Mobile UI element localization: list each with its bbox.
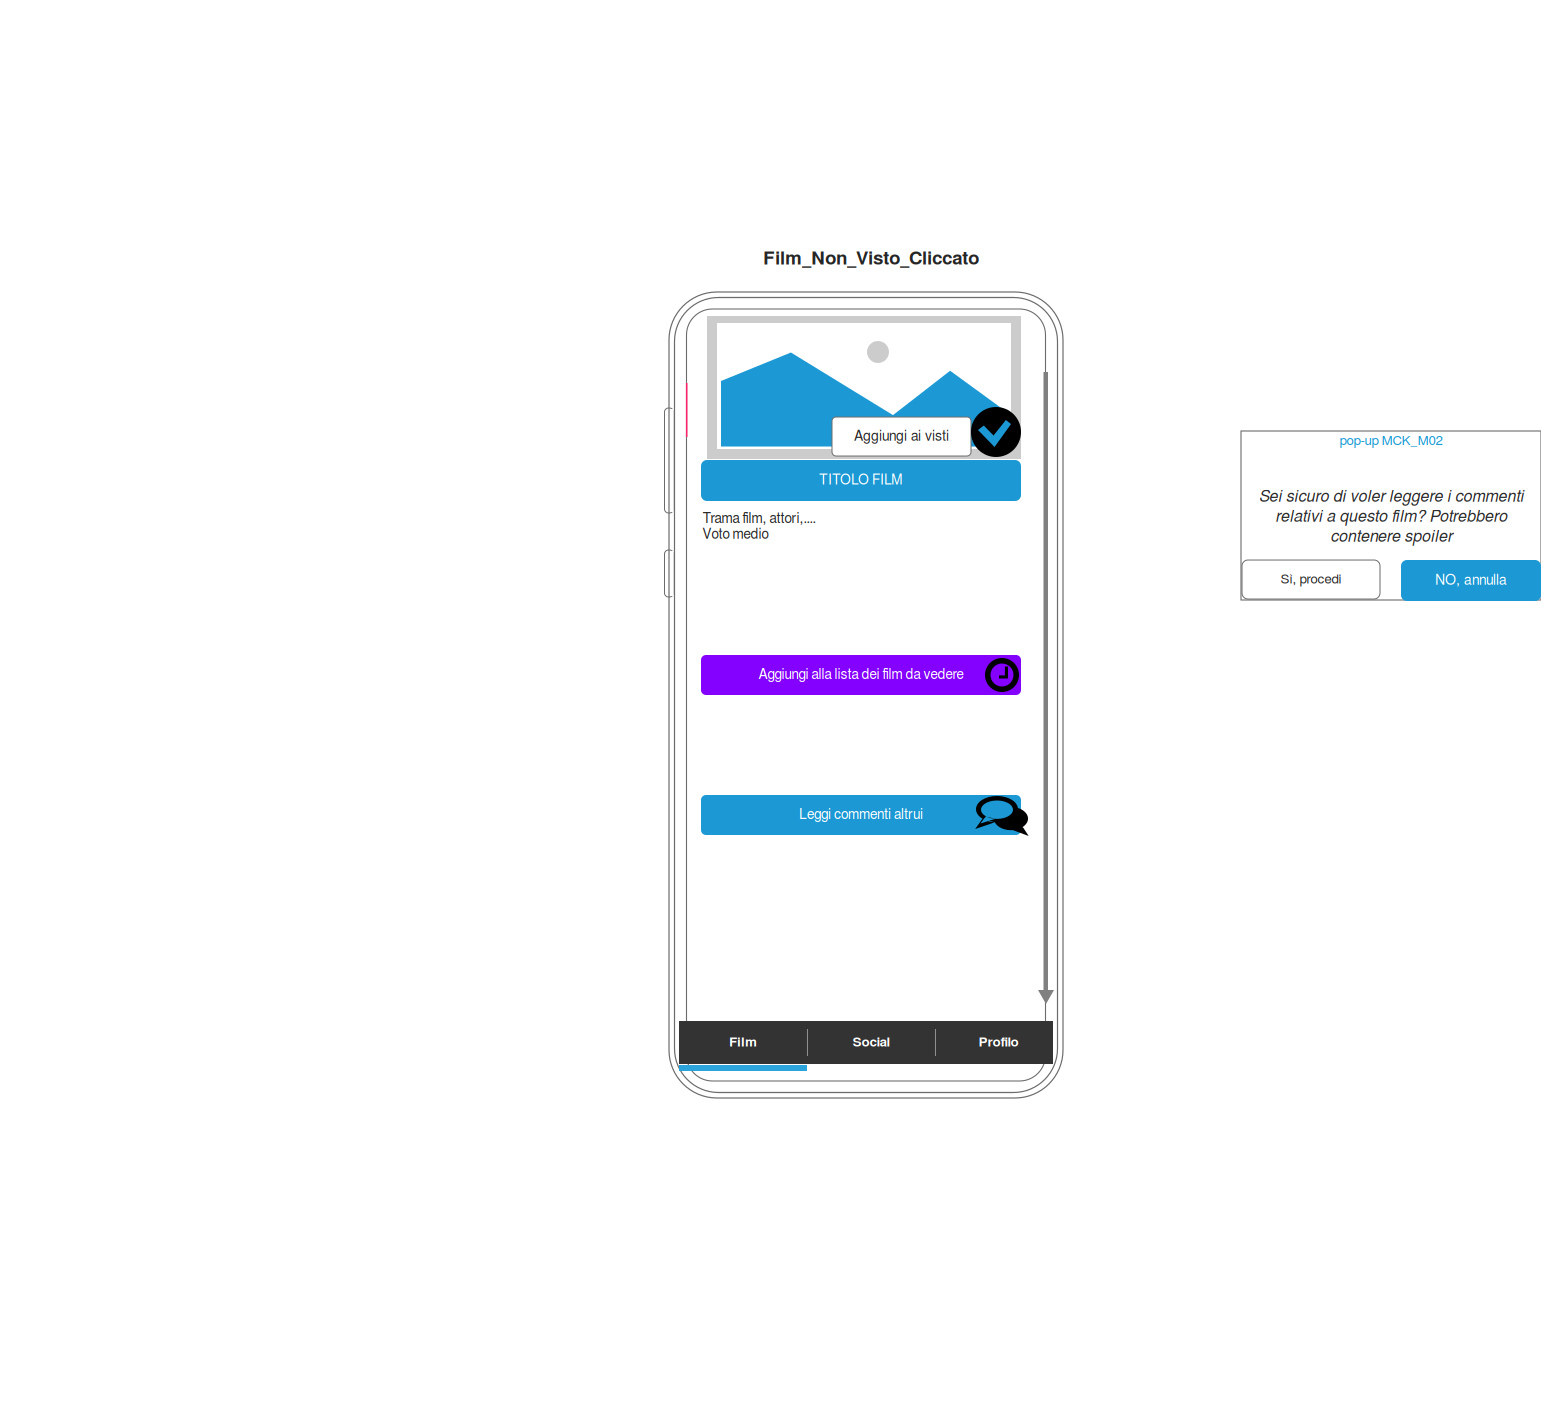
staticText: Sì, procedi — [1280, 573, 1341, 586]
button[interactable]: Leggi commenti altrui — [701, 795, 1021, 835]
staticText: Film_Non_Visto_Cliccato — [763, 250, 979, 268]
button[interactable]: Sì, procedi — [1242, 560, 1380, 599]
button[interactable]: Aggiungi alla lista dei film da vedere — [701, 655, 1021, 695]
staticText: pop-up MCK_M02 — [1339, 434, 1442, 448]
button[interactable]: Film — [679, 1021, 807, 1064]
staticText: Leggi commenti altrui — [799, 808, 923, 822]
button[interactable]: TITOLO FILM — [701, 460, 1021, 501]
staticText: Sei sicuro di voler leggere i commenti r… — [1258, 489, 1523, 545]
button[interactable]: Social — [808, 1021, 935, 1064]
staticText: TITOLO FILM — [819, 474, 903, 487]
staticText: Film — [729, 1036, 757, 1049]
staticText: Voto medio — [702, 528, 768, 541]
button[interactable]: NO, annulla — [1401, 560, 1541, 601]
staticText: Social — [852, 1036, 890, 1049]
staticText: NO, annulla — [1435, 573, 1507, 587]
staticText: Trama film, attori,.... — [702, 512, 815, 526]
staticText: Profilo — [978, 1036, 1018, 1049]
staticText: Aggiungi ai visti — [854, 429, 949, 443]
staticText: Aggiungi alla lista dei film da vedere — [758, 668, 963, 682]
button[interactable]: Aggiungi ai visti — [832, 417, 971, 456]
button[interactable]: Segna come visto — [971, 407, 1021, 457]
button[interactable]: Profilo — [936, 1021, 1061, 1064]
